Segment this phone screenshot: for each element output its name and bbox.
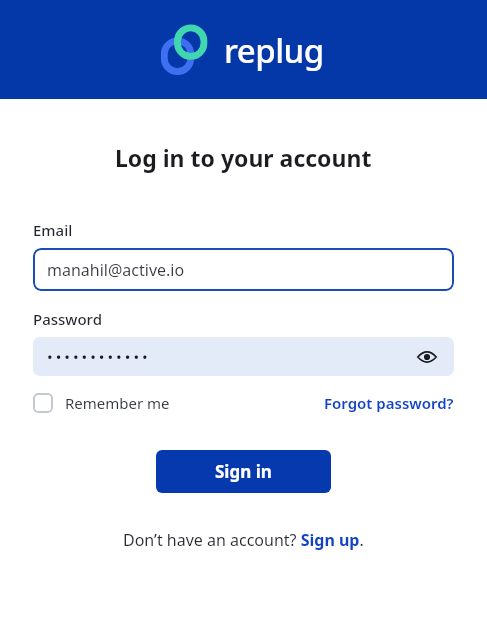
staticText: Forgot password? <box>324 393 454 413</box>
button[interactable]: Don’t have an account? Sign up. <box>123 529 364 551</box>
staticText: Email <box>33 220 73 240</box>
staticText: replug <box>224 28 324 73</box>
button[interactable]: Sign in <box>156 450 331 493</box>
button[interactable]: Remember me <box>33 393 170 413</box>
button[interactable]: Forgot password? <box>324 393 454 413</box>
staticText: Log in to your account <box>115 142 372 173</box>
staticText: Don’t have an account? Sign up. <box>123 529 364 551</box>
staticText: manahil@active.io <box>47 259 185 281</box>
button[interactable]: manahil@active.io <box>33 248 454 291</box>
button[interactable]: Show password <box>414 344 440 370</box>
staticText: Sign in <box>215 460 272 483</box>
staticText: Password <box>33 309 102 329</box>
staticText: •••••••••••• <box>47 347 151 367</box>
button[interactable]: •••••••••••• <box>33 337 454 376</box>
staticText: Remember me <box>65 393 170 413</box>
